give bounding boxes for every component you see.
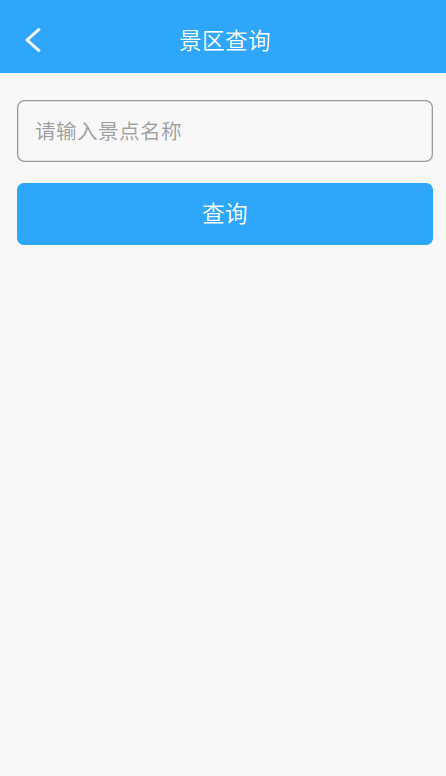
button[interactable]: 请输入景点名称 [17, 100, 433, 162]
staticText: 请输入景点名称 [35, 115, 182, 145]
staticText: 查询 [202, 196, 248, 228]
staticText: 景区查询 [179, 23, 271, 55]
button[interactable]: Back [11, 18, 55, 62]
button[interactable]: 查询 [17, 183, 433, 245]
